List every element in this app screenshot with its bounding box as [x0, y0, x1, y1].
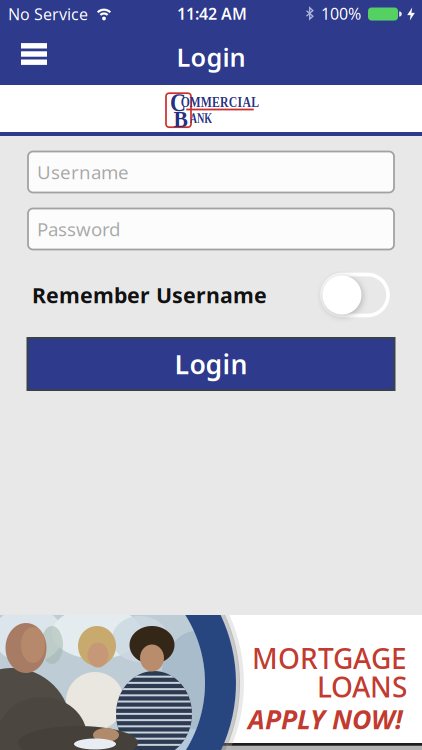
staticText: Remember Username — [32, 281, 267, 309]
button[interactable]: Password — [28, 208, 394, 249]
staticText: No Service — [8, 3, 88, 25]
staticText: MORTGAGE — [252, 640, 407, 677]
staticText: APPLY NOW! — [248, 701, 403, 736]
staticText: Username — [37, 160, 129, 184]
button[interactable]: Login — [27, 338, 394, 390]
button[interactable]: Username — [28, 151, 394, 192]
button[interactable] — [322, 274, 388, 315]
staticText: ANK — [185, 111, 216, 126]
staticText: 100% — [321, 3, 361, 24]
staticText: Login — [174, 346, 247, 382]
staticText: OMMERCIAL — [171, 94, 269, 110]
staticText: B — [173, 105, 189, 132]
staticText: 11:42 AM — [177, 3, 247, 24]
button[interactable] — [21, 43, 47, 65]
staticText: LOANS — [317, 668, 407, 705]
staticText: Login — [176, 40, 245, 74]
staticText: Password — [37, 217, 120, 241]
button[interactable]: MORTGAGE — [0, 615, 422, 750]
staticText: C — [169, 89, 187, 117]
